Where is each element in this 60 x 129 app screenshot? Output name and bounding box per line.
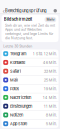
staticText: Fotos [10, 86, 19, 91]
staticText: 33 Min. [44, 69, 57, 74]
staticText: Mehr [46, 18, 54, 22]
staticText: Telegram [10, 51, 27, 56]
staticText: Notizen [10, 112, 23, 117]
button[interactable]: Telegram [1, 49, 58, 58]
staticText: 5 Min. [46, 121, 57, 126]
button[interactable]: Mehr [44, 17, 56, 22]
button[interactable]: Notizen [1, 111, 58, 119]
staticText: 25 Min. [44, 77, 57, 82]
staticText: 19 Min. [44, 86, 57, 91]
button[interactable]: Nachrichten [1, 93, 58, 102]
staticText: Berechtigungsprüfung [5, 8, 47, 13]
staticText: Nachrichten [10, 95, 31, 100]
staticText: 1 Std. 12 Min. [33, 51, 57, 56]
button[interactable]: Profil [50, 8, 60, 13]
staticText: Mail [10, 77, 18, 82]
staticText: Letzte 30 Stunden [3, 44, 32, 48]
staticText: 8 Min. [46, 112, 57, 117]
staticText: 14 Min. [43, 95, 57, 100]
staticText: Sieh dir an, wie viel Zeit du mit Apps u… [5, 23, 55, 40]
staticText: Bildschirmzeit [4, 17, 32, 22]
staticText: ‹ [2, 7, 4, 14]
button[interactable]: Safari [1, 67, 58, 75]
button[interactable]: Mail [1, 76, 58, 84]
button[interactable]: Fotos [1, 84, 58, 93]
button[interactable]: Einstellungen [1, 102, 58, 110]
staticText: Einstellungen [10, 104, 32, 109]
staticText: 46 Min. [43, 60, 57, 65]
button[interactable]: ‹ [0, 8, 47, 13]
staticText: Safari [10, 69, 21, 74]
staticText: App Store [10, 121, 27, 126]
staticText: 11 Min. [44, 104, 57, 109]
button[interactable]: App Store [1, 119, 58, 128]
button[interactable]: Kontakte [1, 58, 58, 67]
staticText: Kontakte [10, 60, 25, 65]
